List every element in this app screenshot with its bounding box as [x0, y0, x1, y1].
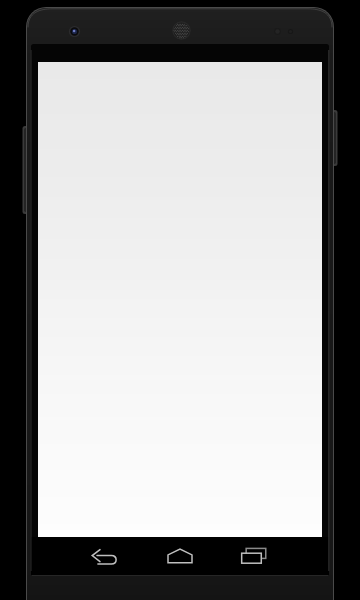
button[interactable]: Home	[158, 539, 202, 573]
button[interactable]: Back	[79, 539, 127, 573]
button[interactable]: Recent apps	[230, 539, 278, 573]
